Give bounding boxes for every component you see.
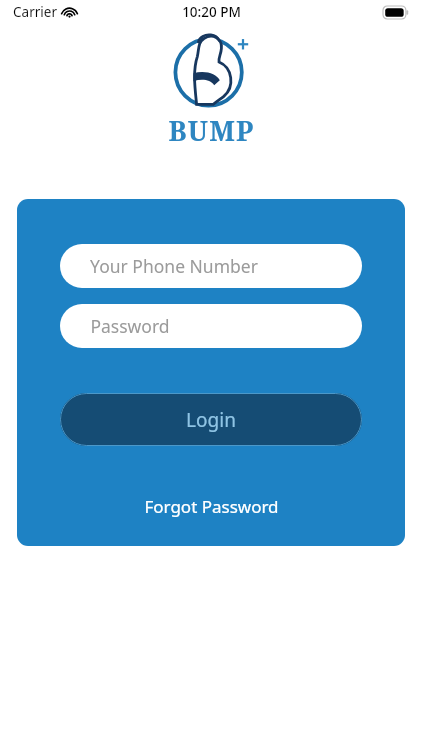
button[interactable]: Password — [60, 304, 362, 348]
staticText: Your Phone Number — [90, 254, 258, 278]
staticText: Password — [90, 314, 170, 338]
staticText: 10:20 PM — [182, 3, 241, 21]
staticText: BUMP — [168, 112, 255, 149]
button[interactable]: Your Phone Number — [60, 244, 362, 288]
staticText: Carrier — [13, 3, 57, 21]
button[interactable]: Forgot Password — [134, 491, 289, 522]
staticText: Forgot Password — [144, 495, 279, 518]
staticText: Login — [186, 407, 236, 433]
button[interactable]: Login — [60, 393, 362, 446]
